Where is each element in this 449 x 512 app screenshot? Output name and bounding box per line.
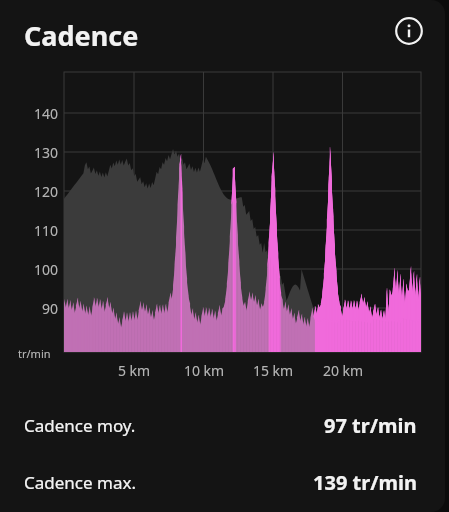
- button[interactable]: Information: [392, 14, 426, 48]
- staticText: 140: [12, 104, 58, 123]
- staticText: 97 tr/min: [324, 412, 417, 439]
- staticText: 20 km: [308, 361, 378, 380]
- staticText: 100: [12, 260, 58, 279]
- staticText: tr/min: [18, 346, 51, 361]
- staticText: 110: [12, 221, 58, 240]
- button[interactable]: Cadence moy.: [0, 405, 445, 445]
- staticText: 130: [12, 143, 58, 162]
- staticText: 120: [12, 182, 58, 201]
- staticText: 139 tr/min: [313, 469, 417, 496]
- staticText: 15 km: [238, 361, 308, 380]
- staticText: Cadence moy.: [24, 414, 136, 437]
- button[interactable]: Cadence max.: [0, 462, 445, 502]
- staticText: Cadence max.: [24, 471, 136, 494]
- staticText: 5 km: [99, 361, 169, 380]
- staticText: 10 km: [169, 361, 239, 380]
- staticText: Cadence: [24, 17, 139, 54]
- staticText: 90: [12, 299, 58, 318]
